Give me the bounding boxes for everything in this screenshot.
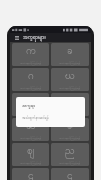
staticText: အသံထွက်ကြည့်ရန် [20, 136, 42, 140]
button[interactable]: ခ [51, 43, 89, 66]
staticText: အသံထွက်ကြည့်ရန် [59, 61, 81, 65]
staticText: ဃ [65, 69, 75, 84]
staticText: င [28, 94, 34, 109]
button[interactable]: ဇ [51, 118, 89, 141]
button[interactable]: ဃ [51, 68, 89, 91]
staticText: ဌ [67, 169, 73, 180]
button[interactable]: ဋ [12, 168, 49, 180]
button[interactable]: ဌ [51, 168, 89, 180]
button[interactable]: ည [51, 143, 89, 166]
staticText: ဈ [27, 144, 35, 159]
button[interactable]: ဈ [12, 143, 49, 166]
staticText: အသံထွက်နားဆင်ရန် [22, 116, 49, 121]
staticText: အသံထွက်ကြည့်ရန် [20, 161, 42, 165]
staticText: က [26, 44, 36, 59]
staticText: ဂ [28, 69, 34, 84]
staticText: အသံထွက်ကြည့်ရန် [20, 61, 42, 65]
staticText: ခ [67, 44, 73, 59]
staticText: အက္ခရာများ [23, 33, 46, 42]
button[interactable]: အက္ခရာ [16, 97, 85, 127]
button[interactable]: ဆ [12, 118, 49, 141]
staticText: အသံထွက်ကြည့်ရန် [59, 86, 81, 90]
button[interactable]: စ [51, 93, 89, 116]
button[interactable]: က [12, 43, 49, 66]
staticText: စ [67, 94, 73, 109]
button[interactable]: င [12, 93, 49, 116]
staticText: ည [65, 144, 75, 159]
staticText: ဋ [28, 169, 34, 180]
staticText: အသံထွက်ကြည့်ရန် [20, 86, 42, 90]
button[interactable]: Open navigation menu [13, 34, 20, 41]
staticText: အက္ခရာ [22, 102, 36, 111]
button[interactable]: ဂ [12, 68, 49, 91]
staticText: အသံထွက်ကြည့်ရန် [59, 136, 81, 140]
staticText: ဆ [26, 119, 36, 134]
staticText: ဇ [67, 119, 73, 134]
staticText: အသံထွက်ကြည့်ရန် [59, 161, 81, 165]
